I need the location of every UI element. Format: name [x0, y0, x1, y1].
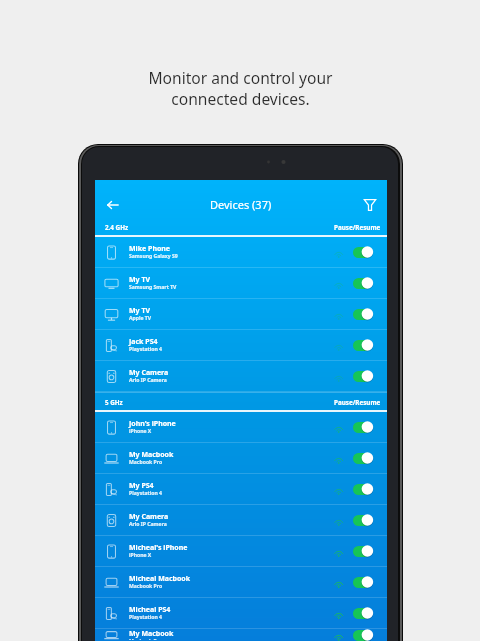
- button[interactable]: Jack PS4: [95, 330, 387, 360]
- button[interactable]: Toggle Micheal's iPhone: [353, 545, 374, 557]
- staticText: Samsung Smart TV: [129, 284, 177, 291]
- staticText: Monitor and control your connected devic…: [148, 67, 333, 110]
- button[interactable]: Back: [100, 193, 124, 217]
- staticText: My TV: [129, 275, 151, 285]
- staticText: Jack PS4: [129, 337, 158, 347]
- button[interactable]: My PS4: [95, 474, 387, 504]
- staticText: John's iPhone: [129, 419, 176, 429]
- button[interactable]: Toggle My TV: [353, 277, 374, 289]
- staticText: My Camera: [129, 512, 169, 522]
- button[interactable]: Toggle My Macbook: [353, 452, 374, 464]
- button[interactable]: My TV: [95, 299, 387, 329]
- staticText: My Camera: [129, 368, 169, 378]
- staticText: Apple TV: [129, 315, 152, 322]
- staticText: Micheal Macbook: [129, 574, 191, 584]
- staticText: 2.4 GHz: [105, 223, 129, 232]
- button[interactable]: My Camera: [95, 361, 387, 391]
- staticText: 5 GHz: [105, 398, 123, 407]
- staticText: Arlo IP Camera: [129, 377, 167, 384]
- staticText: Micheal's iPhone: [129, 543, 188, 553]
- button[interactable]: Toggle My Camera: [353, 370, 374, 382]
- staticText: Playstation 4: [129, 614, 162, 621]
- button[interactable]: Toggle My Macbook: [353, 629, 374, 641]
- button[interactable]: My Camera: [95, 505, 387, 535]
- button[interactable]: My Macbook: [95, 443, 387, 473]
- button[interactable]: Toggle John's iPhone: [353, 421, 374, 433]
- staticText: Macbook Pro: [129, 583, 163, 590]
- staticText: My Macbook: [129, 629, 174, 639]
- button[interactable]: Toggle My Camera: [353, 514, 374, 526]
- staticText: Pause/Resume: [334, 223, 381, 232]
- staticText: Macbook Pro: [129, 638, 163, 640]
- staticText: Playstation 4: [129, 490, 162, 497]
- button[interactable]: My TV: [95, 268, 387, 298]
- button[interactable]: Toggle Micheal PS4: [353, 607, 374, 619]
- button[interactable]: Toggle Micheal Macbook: [353, 576, 374, 588]
- staticText: Arlo IP Camera: [129, 521, 167, 528]
- button[interactable]: Filter: [360, 195, 380, 215]
- staticText: Micheal PS4: [129, 605, 171, 615]
- button[interactable]: Toggle Mike Phone: [353, 246, 374, 258]
- staticText: My Macbook: [129, 450, 174, 460]
- button[interactable]: Toggle Jack PS4: [353, 339, 374, 351]
- button[interactable]: John's iPhone: [95, 412, 387, 442]
- button[interactable]: My Macbook: [95, 629, 387, 641]
- button[interactable]: Micheal PS4: [95, 598, 387, 628]
- button[interactable]: Mike Phone: [95, 237, 387, 267]
- staticText: My TV: [129, 306, 151, 316]
- staticText: Macbook Pro: [129, 459, 163, 466]
- staticText: My PS4: [129, 481, 154, 491]
- button[interactable]: Toggle My TV: [353, 308, 374, 320]
- staticText: Pause/Resume: [334, 398, 381, 407]
- staticText: Samsung Galaxy S9: [129, 253, 178, 260]
- staticText: Devices (37): [210, 197, 272, 212]
- button[interactable]: Toggle My PS4: [353, 483, 374, 495]
- button[interactable]: Micheal's iPhone: [95, 536, 387, 566]
- staticText: iPhone X: [129, 428, 152, 435]
- staticText: Mike Phone: [129, 244, 171, 254]
- staticText: Playstation 4: [129, 346, 162, 353]
- staticText: iPhone X: [129, 552, 152, 559]
- button[interactable]: Micheal Macbook: [95, 567, 387, 597]
